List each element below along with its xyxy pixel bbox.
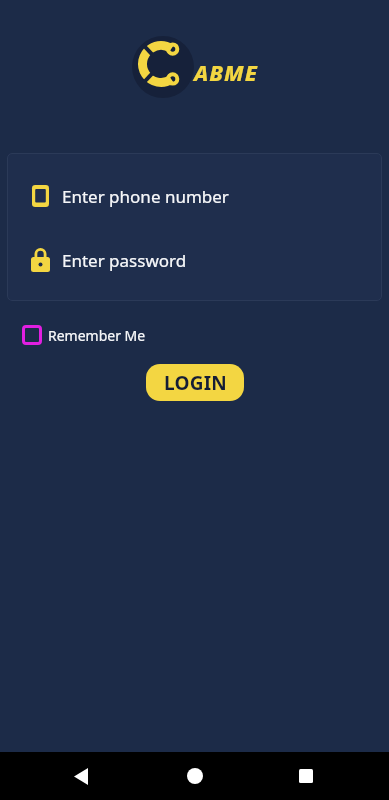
button[interactable] xyxy=(286,752,326,800)
button[interactable] xyxy=(175,752,215,800)
button[interactable]: Enter phone number xyxy=(7,175,382,217)
staticText: Enter phone number xyxy=(62,185,229,208)
button[interactable] xyxy=(61,752,101,800)
staticText: ABME xyxy=(194,57,258,87)
button[interactable]: Remember Me xyxy=(22,325,146,345)
staticText: LOGIN xyxy=(164,370,227,396)
button[interactable]: Enter password xyxy=(7,239,382,281)
staticText: Enter password xyxy=(62,249,187,272)
staticText: Remember Me xyxy=(48,326,146,345)
button[interactable]: LOGIN xyxy=(146,364,244,401)
